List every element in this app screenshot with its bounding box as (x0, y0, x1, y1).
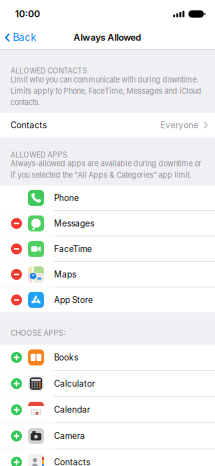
button[interactable]: Maps (0, 262, 215, 287)
button[interactable]: App Store (0, 287, 215, 312)
staticText: CHOOSE APPS: (11, 329, 66, 338)
button[interactable]: Messages (0, 211, 215, 236)
staticText: Limit who you can communicate with durin… (11, 75, 202, 107)
staticText: Messages (54, 218, 94, 229)
button[interactable]: Contacts (0, 113, 215, 137)
button[interactable]: Back (0, 26, 36, 49)
button[interactable]: Contacts (0, 449, 215, 466)
staticText: Calculator (54, 378, 95, 389)
staticText: Calendar (54, 405, 90, 415)
staticText: Contacts (54, 457, 90, 466)
staticText: Camera (54, 431, 85, 441)
staticText: Always Allowed (73, 32, 141, 43)
button[interactable]: Phone (0, 185, 215, 210)
staticText: App Store (54, 295, 93, 305)
staticText: Back (13, 31, 36, 43)
button[interactable]: Camera (0, 423, 215, 449)
staticText: Books (54, 352, 78, 362)
staticText: ALLOWED APPS (11, 150, 68, 159)
staticText: 10:00 (15, 8, 40, 19)
staticText: Always-allowed apps are available during… (11, 159, 202, 179)
staticText: Everyone (160, 120, 198, 130)
button[interactable]: FaceTime (0, 236, 215, 261)
staticText: Maps (54, 269, 76, 280)
staticText: Phone (54, 193, 79, 203)
staticText: FaceTime (54, 244, 92, 254)
staticText: ALLOWED CONTACTS (11, 66, 88, 75)
staticText: Contacts (11, 120, 47, 130)
button[interactable]: Calculator (0, 371, 215, 396)
button[interactable]: Books (0, 345, 215, 370)
button[interactable]: Calendar (0, 397, 215, 423)
